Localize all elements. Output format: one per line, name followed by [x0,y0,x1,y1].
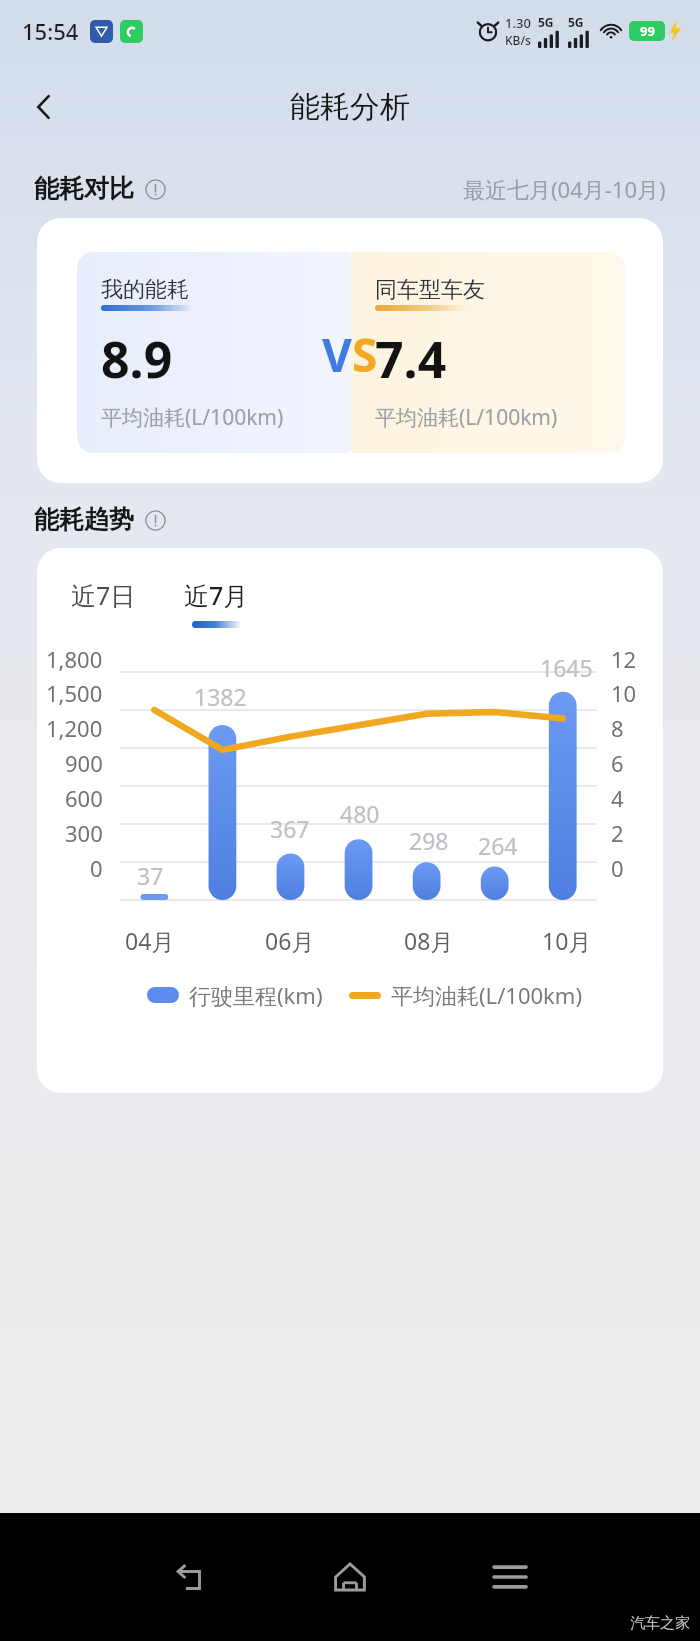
staticText: 平均油耗(L/100km) [391,980,582,1010]
button[interactable]: Home [270,1513,430,1641]
staticText: 37 [137,860,164,891]
staticText: 5G [538,14,554,30]
staticText: 4 [611,783,624,813]
staticText: 300 [65,818,103,848]
staticText: VS [322,323,378,386]
staticText: 06月 [265,925,315,956]
staticText: 能耗趋势 [34,504,134,535]
staticText: 1645 [540,652,593,683]
staticText: 0 [611,853,624,883]
staticText: 8 [611,713,624,743]
staticText: 04月 [125,925,175,956]
staticText: 能耗对比 [34,173,134,204]
staticText: 我的能耗 [101,276,189,304]
staticText: 1382 [194,681,247,712]
button[interactable]: Back [18,81,70,133]
staticText: 1,200 [46,713,103,743]
staticText: 最近七月(04月-10月) [463,174,666,204]
staticText: 10 [611,678,637,708]
staticText: 10月 [542,925,592,956]
staticText: 1,800 [46,644,103,674]
staticText: 汽车之家 [630,1614,690,1633]
staticText: 600 [65,783,103,813]
staticText: 6 [611,748,624,778]
staticText: 15:54 [22,16,79,46]
button[interactable]: 能耗趋势 说明 [143,508,167,532]
staticText: 367 [270,813,310,844]
staticText: 近7月 [184,578,249,612]
button[interactable]: 近7月 [180,578,253,628]
staticText: 99 [640,22,655,40]
staticText: 12 [611,644,637,674]
staticText: KB/s [505,32,531,48]
staticText: 2 [611,818,624,848]
staticText: 1.30 [505,14,531,32]
staticText: 5G [568,14,584,30]
staticText: 能耗分析 [290,88,410,126]
button[interactable]: Recent apps [430,1513,590,1641]
staticText: 近7日 [71,578,136,612]
staticText: 8.9 [101,325,173,393]
staticText: 900 [65,748,103,778]
staticText: 平均油耗(L/100km) [375,403,558,432]
staticText: 平均油耗(L/100km) [101,403,284,432]
button[interactable]: 近7日 [67,578,140,628]
staticText: 08月 [404,925,454,956]
button[interactable]: Back [110,1513,270,1641]
button[interactable]: 能耗对比 说明 [143,177,167,201]
staticText: 1,500 [46,678,103,708]
staticText: 行驶里程(km) [189,980,323,1010]
staticText: 同车型车友 [375,276,485,304]
staticText: 264 [478,830,518,861]
button[interactable]: 我的能耗 [37,218,663,483]
staticText: 7.4 [375,325,447,393]
staticText: 298 [409,825,449,856]
staticText: 480 [340,798,380,829]
staticText: 0 [90,853,103,883]
